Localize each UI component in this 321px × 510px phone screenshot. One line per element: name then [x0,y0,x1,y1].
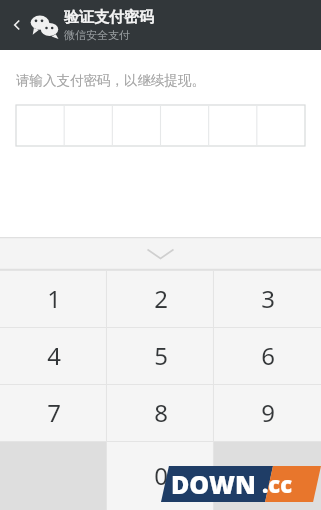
staticText: 2 [154,282,168,315]
staticText: 验证支付密码 [64,8,154,27]
staticText: 0 [154,459,168,492]
staticText: 6 [261,339,275,372]
staticText: 4 [47,339,61,372]
staticText: 请输入支付密码，以继续提现。 [16,72,205,89]
button[interactable]: Hide keyboard [0,237,321,270]
staticText: 微信安全支付 [64,28,130,42]
staticText: 3 [261,282,275,315]
button[interactable]: Delete [214,441,321,510]
button[interactable]: 9 [214,384,321,441]
button[interactable]: Back [0,0,34,50]
button[interactable]: 5 [107,327,214,384]
button[interactable]: 3 [214,270,321,327]
staticText: .cc [262,469,293,499]
staticText: 1 [47,282,61,315]
staticText: 8 [154,396,168,429]
button[interactable]: 0 [107,441,214,510]
staticText: 9 [261,396,275,429]
button[interactable]: 6 [214,327,321,384]
staticText: 7 [47,396,61,429]
button[interactable]: 1 [0,270,107,327]
button[interactable]: 2 [107,270,214,327]
staticText: 5 [154,339,168,372]
button[interactable]: 7 [0,384,107,441]
button[interactable]: 4 [0,327,107,384]
staticText: DOWN [171,467,256,501]
button[interactable] [16,105,305,146]
button[interactable]: 8 [107,384,214,441]
